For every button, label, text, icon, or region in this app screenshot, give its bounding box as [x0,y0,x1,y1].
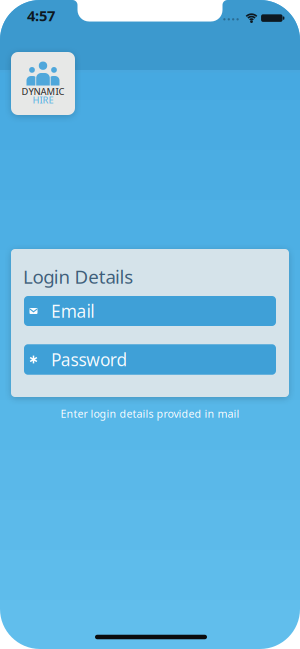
button[interactable]: Email [24,296,276,326]
staticText: Email [51,299,94,322]
staticText: Enter login details provided in mail [60,406,239,421]
staticText: Password [51,348,128,371]
staticText: 4:57 [27,6,55,25]
staticText: DYNAMIC [21,85,64,98]
button[interactable]: Password [24,344,276,375]
staticText: HIRE [32,94,53,106]
staticText: Login Details [23,264,133,289]
